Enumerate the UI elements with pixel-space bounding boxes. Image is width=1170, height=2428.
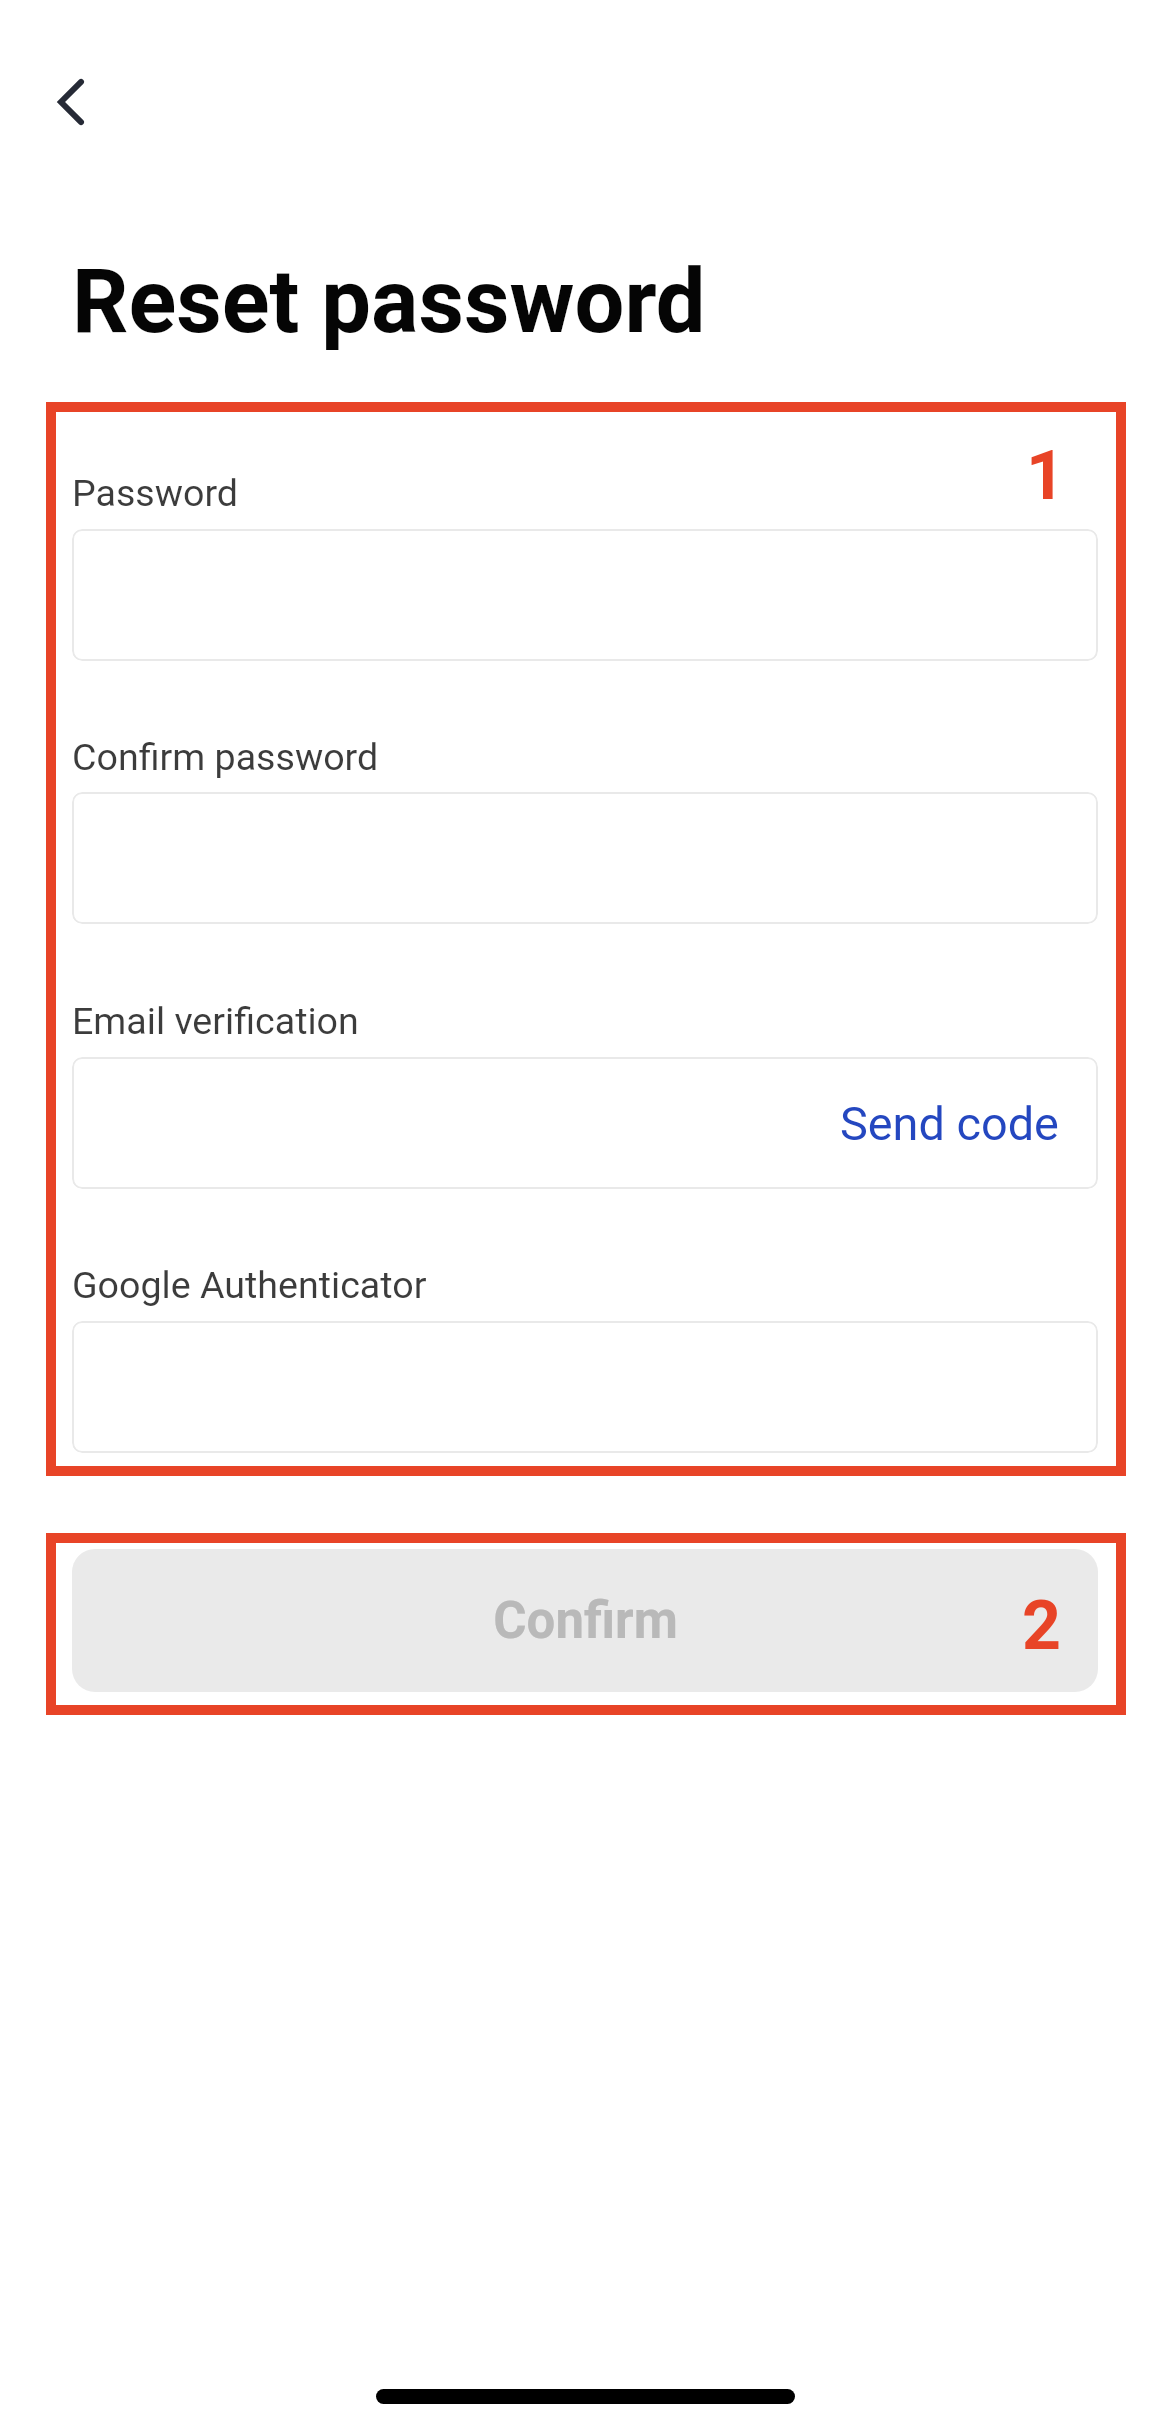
staticText: Confirm password bbox=[72, 735, 379, 779]
staticText: Confirm bbox=[493, 1591, 678, 1651]
button[interactable] bbox=[72, 792, 1098, 924]
staticText: Send code bbox=[840, 1097, 1059, 1152]
staticText: Password bbox=[72, 471, 239, 515]
staticText: 1 bbox=[1026, 436, 1066, 516]
button[interactable] bbox=[72, 529, 1098, 661]
staticText: Email verification bbox=[72, 999, 359, 1043]
button[interactable]: Send code bbox=[72, 1057, 1098, 1189]
button[interactable]: Confirm bbox=[72, 1549, 1098, 1692]
staticText: Google Authenticator bbox=[72, 1263, 427, 1307]
button[interactable] bbox=[72, 1321, 1098, 1453]
button[interactable]: Send code bbox=[840, 1097, 1059, 1152]
button[interactable]: Back bbox=[25, 56, 117, 148]
staticText: 2 bbox=[1022, 1586, 1062, 1666]
staticText: Reset password bbox=[72, 250, 706, 354]
